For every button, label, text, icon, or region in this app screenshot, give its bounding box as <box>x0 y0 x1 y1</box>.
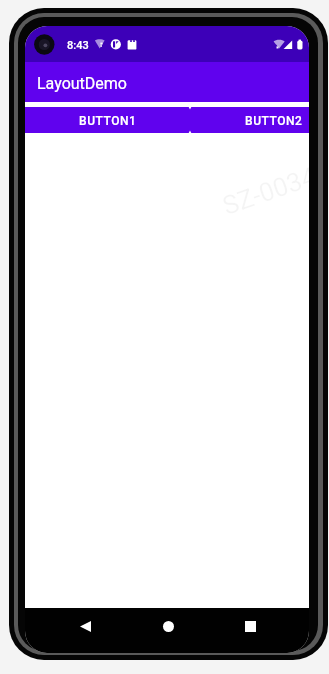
staticText: BUTTON1 <box>79 114 137 128</box>
button[interactable]: BUTTON2 <box>190 107 309 133</box>
staticText: LayoutDemo <box>37 74 127 93</box>
staticText: BUTTON2 <box>245 114 303 128</box>
button[interactable]: BUTTON1 <box>25 107 190 133</box>
button[interactable]: Home <box>154 608 182 652</box>
button[interactable]: Back <box>71 608 99 652</box>
staticText: 8:43 <box>67 39 89 52</box>
button[interactable]: Recent apps <box>236 608 264 652</box>
